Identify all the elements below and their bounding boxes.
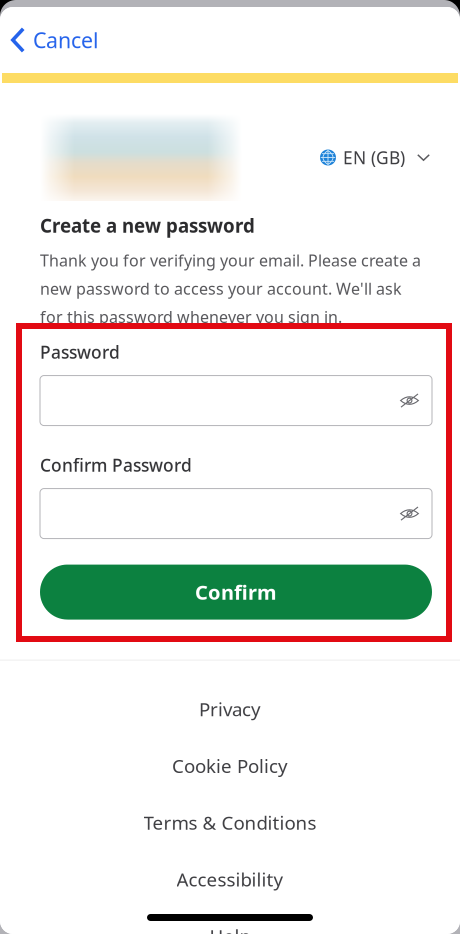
button[interactable]: Cancel bbox=[0, 17, 113, 63]
button[interactable]: Terms & Conditions bbox=[0, 794, 460, 851]
staticText: Help bbox=[209, 924, 250, 934]
staticText: Cookie Policy bbox=[172, 753, 288, 778]
staticText: Confirm bbox=[195, 579, 277, 605]
staticText: Privacy bbox=[199, 697, 261, 721]
staticText: EN (GB) bbox=[343, 146, 405, 169]
button[interactable]: EN (GB) bbox=[320, 138, 430, 177]
button[interactable]: Cookie Policy bbox=[0, 737, 460, 794]
staticText: Create a new password bbox=[40, 213, 255, 238]
button[interactable]: Confirm bbox=[40, 565, 432, 620]
button[interactable]: Privacy bbox=[0, 681, 460, 737]
staticText: Confirm Password bbox=[40, 454, 192, 477]
button[interactable]: Accessibility bbox=[0, 851, 460, 908]
staticText: Accessibility bbox=[176, 867, 283, 892]
staticText: Cancel bbox=[33, 26, 99, 54]
button[interactable]: Help bbox=[0, 908, 460, 934]
staticText: Terms & Conditions bbox=[143, 810, 316, 835]
button[interactable]: Show Password bbox=[387, 379, 432, 423]
button[interactable]: Show Confirm Password bbox=[387, 492, 432, 536]
staticText: Thank you for verifying your email. Plea… bbox=[40, 250, 421, 327]
staticText: Password bbox=[40, 340, 120, 363]
